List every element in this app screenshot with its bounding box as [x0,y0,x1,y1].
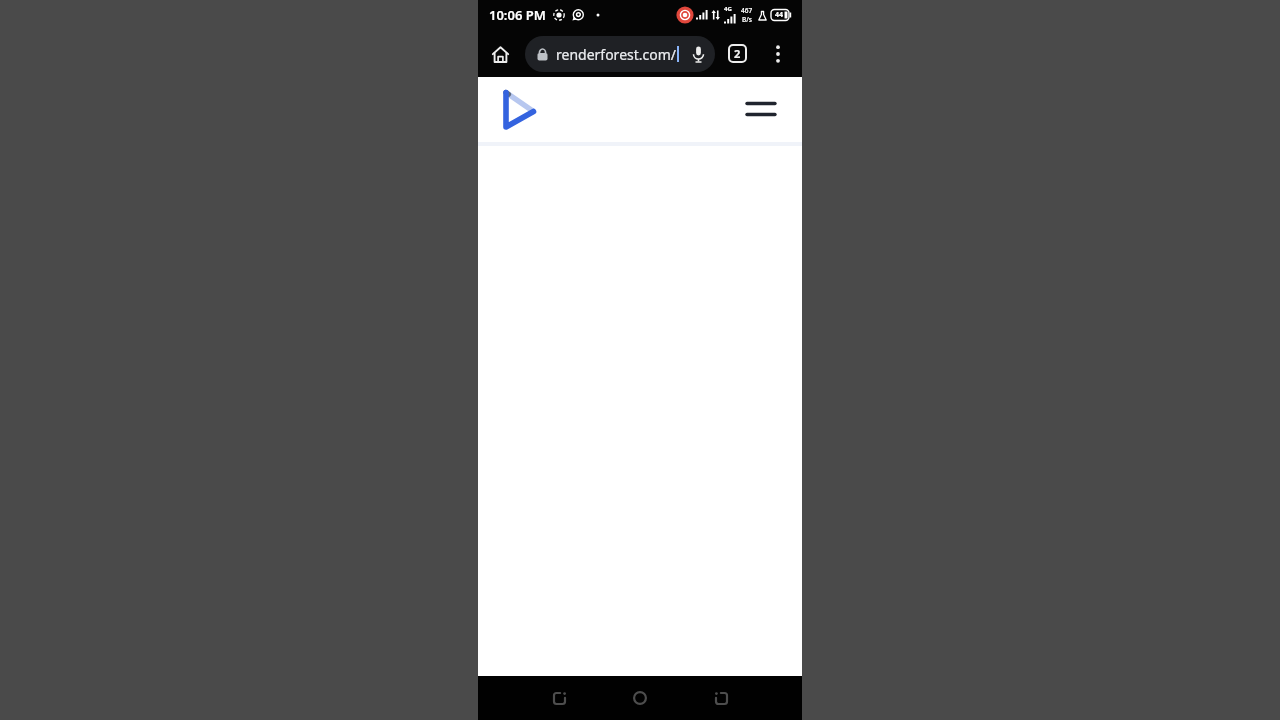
button[interactable] [618,676,662,720]
button[interactable] [537,676,581,720]
staticText: 10:06 PM [489,6,546,24]
staticText: 4G [724,5,732,13]
staticText: 2 [734,46,741,61]
staticText: B/s [742,15,752,24]
staticText: 44 [775,10,784,20]
staticText: 467 [741,6,753,15]
button[interactable] [486,40,514,68]
button[interactable] [768,44,788,64]
button[interactable] [747,100,775,120]
button[interactable]: renderforest.com/ [525,36,715,72]
button[interactable]: 2 [728,44,747,63]
button[interactable] [699,676,743,720]
staticText: renderforest.com/ [556,45,677,64]
